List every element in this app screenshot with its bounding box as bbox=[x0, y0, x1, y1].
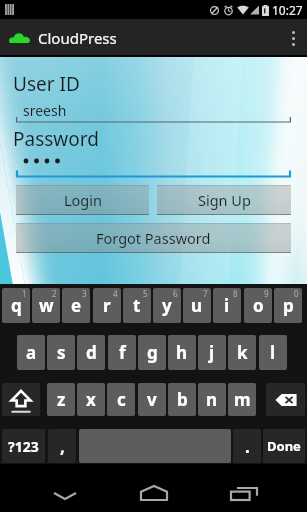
staticText: Done bbox=[267, 437, 301, 455]
button[interactable]: n bbox=[198, 383, 226, 416]
staticText: sreesh bbox=[23, 101, 67, 120]
staticText: x bbox=[86, 388, 96, 411]
button[interactable]: i bbox=[213, 288, 241, 323]
staticText: j bbox=[209, 341, 215, 364]
button[interactable]: y bbox=[153, 288, 181, 323]
button[interactable]: a bbox=[17, 335, 45, 370]
staticText: a bbox=[26, 341, 37, 364]
staticText: User ID bbox=[13, 71, 80, 97]
staticText: s bbox=[57, 341, 66, 364]
staticText: v bbox=[147, 388, 157, 411]
staticText: g bbox=[147, 341, 158, 364]
button[interactable]: d bbox=[77, 335, 105, 370]
staticText: l bbox=[270, 341, 276, 364]
button[interactable]: r bbox=[93, 288, 121, 323]
button[interactable]: h bbox=[168, 335, 196, 370]
staticText: o bbox=[253, 294, 264, 317]
staticText: d bbox=[86, 341, 97, 364]
staticText: , bbox=[60, 435, 65, 458]
button[interactable]: z bbox=[47, 383, 75, 416]
button[interactable]: Sign Up bbox=[157, 185, 291, 215]
staticText: h bbox=[176, 341, 188, 364]
button[interactable]: b bbox=[168, 383, 196, 416]
button[interactable]: j bbox=[198, 335, 226, 370]
staticText: 4 bbox=[113, 288, 118, 299]
staticText: z bbox=[57, 388, 66, 411]
button[interactable]: x bbox=[77, 383, 105, 416]
button[interactable]: Done bbox=[263, 429, 305, 463]
staticText: Forgot Password bbox=[96, 228, 211, 248]
staticText: p bbox=[283, 294, 294, 317]
staticText: b bbox=[177, 388, 188, 411]
button[interactable]: o bbox=[244, 288, 272, 323]
button[interactable]: v bbox=[138, 383, 166, 416]
staticText: 8 bbox=[233, 288, 238, 299]
button[interactable]: k bbox=[228, 335, 256, 370]
staticText: 2 bbox=[52, 288, 57, 299]
button[interactable]: m bbox=[228, 383, 256, 416]
button[interactable]: e bbox=[62, 288, 90, 323]
staticText: y bbox=[162, 294, 172, 317]
button[interactable]: Shift bbox=[2, 383, 40, 416]
button[interactable]: . bbox=[233, 429, 261, 463]
staticText: e bbox=[71, 294, 82, 317]
staticText: 5 bbox=[143, 288, 148, 299]
button[interactable]: Recent apps bbox=[212, 470, 276, 512]
button[interactable]: Backspace bbox=[266, 383, 305, 416]
staticText: . bbox=[245, 435, 250, 458]
button[interactable]: ?123 bbox=[2, 429, 45, 463]
staticText: w bbox=[39, 294, 54, 317]
staticText: 3 bbox=[82, 288, 87, 299]
staticText: k bbox=[237, 341, 248, 364]
staticText: Sign Up bbox=[198, 190, 251, 210]
button[interactable]: w bbox=[32, 288, 60, 323]
staticText: 7 bbox=[203, 288, 208, 299]
staticText: c bbox=[117, 388, 126, 411]
staticText: t bbox=[133, 294, 141, 317]
button[interactable]: l bbox=[259, 335, 287, 370]
button[interactable]: c bbox=[107, 383, 135, 416]
button[interactable]: Hide keyboard bbox=[33, 470, 97, 512]
button[interactable]: u bbox=[183, 288, 211, 323]
staticText: 1 bbox=[22, 288, 27, 299]
button[interactable]: s bbox=[47, 335, 75, 370]
staticText: CloudPress bbox=[38, 28, 117, 48]
staticText: Password bbox=[13, 126, 99, 152]
button[interactable]: Login bbox=[16, 185, 149, 215]
staticText: ?123 bbox=[8, 437, 39, 456]
staticText: q bbox=[11, 294, 22, 317]
button[interactable]: Forgot Password bbox=[16, 223, 291, 253]
button[interactable]: g bbox=[138, 335, 166, 370]
staticText: n bbox=[206, 388, 218, 411]
staticText: m bbox=[234, 388, 251, 411]
staticText: 0 bbox=[294, 288, 299, 299]
button[interactable]: f bbox=[108, 335, 136, 370]
staticText: 6 bbox=[173, 288, 178, 299]
staticText: 9 bbox=[264, 288, 269, 299]
staticText: i bbox=[224, 294, 230, 317]
staticText: f bbox=[119, 341, 126, 364]
button[interactable]: q bbox=[2, 288, 30, 323]
button[interactable]: Home bbox=[122, 470, 186, 512]
staticText: r bbox=[103, 294, 111, 317]
button[interactable]: More options bbox=[279, 19, 307, 57]
staticText: u bbox=[191, 294, 203, 317]
button[interactable]: p bbox=[274, 288, 302, 323]
staticText: Login bbox=[64, 190, 102, 210]
staticText: 10:27 bbox=[272, 2, 303, 18]
button[interactable]: , bbox=[48, 429, 76, 463]
button[interactable]: t bbox=[123, 288, 151, 323]
